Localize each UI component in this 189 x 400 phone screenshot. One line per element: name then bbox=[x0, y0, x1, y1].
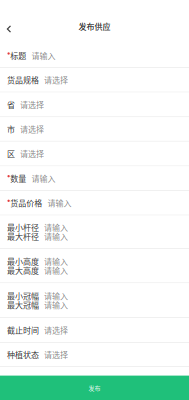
staticText: 请输入 bbox=[31, 50, 55, 61]
staticText: 请选择 bbox=[20, 99, 44, 110]
staticText: 最小冠幅 bbox=[7, 290, 39, 301]
staticText: 区 bbox=[7, 148, 15, 159]
staticText: 请输入 bbox=[47, 197, 71, 209]
button[interactable]: 种植状态 bbox=[0, 343, 189, 367]
button[interactable]: 区 bbox=[0, 142, 189, 166]
staticText: 货品规格 bbox=[7, 74, 39, 86]
staticText: 数量 bbox=[10, 172, 26, 184]
button[interactable]: 最小杆径 bbox=[0, 216, 189, 249]
staticText: 请选择 bbox=[44, 349, 68, 360]
staticText: 最大杆径 bbox=[7, 230, 39, 242]
staticText: 最大冠幅 bbox=[7, 299, 39, 310]
staticText: 截止时间 bbox=[7, 324, 39, 336]
button[interactable]: 货品规格 bbox=[0, 68, 189, 93]
button[interactable]: 最小高度 bbox=[0, 249, 189, 283]
staticText: 请选择 bbox=[44, 74, 68, 86]
staticText: 请输入 bbox=[44, 299, 68, 310]
staticText: 标题 bbox=[10, 50, 26, 61]
button[interactable]: 截止时间 bbox=[0, 318, 189, 343]
button[interactable]: 省 bbox=[0, 93, 189, 117]
staticText: 请输入 bbox=[31, 172, 55, 184]
staticText: 发布 bbox=[88, 383, 100, 392]
staticText: 请选择 bbox=[20, 148, 44, 159]
button[interactable]: 货品价格 bbox=[0, 191, 189, 216]
button[interactable]: 数量 bbox=[0, 166, 189, 191]
button[interactable]: 发布 bbox=[0, 376, 189, 400]
button[interactable]: Back bbox=[0, 0, 20, 44]
staticText: 省 bbox=[7, 99, 15, 110]
button[interactable]: 标题 bbox=[0, 44, 189, 68]
button[interactable]: 最小冠幅 bbox=[0, 283, 189, 318]
staticText: 请输入 bbox=[44, 290, 68, 301]
staticText: 市 bbox=[7, 123, 15, 135]
button[interactable]: 市 bbox=[0, 117, 189, 142]
staticText: 请选择 bbox=[44, 324, 68, 336]
staticText: 种植状态 bbox=[7, 349, 39, 360]
staticText: 最小杆径 bbox=[7, 221, 39, 233]
staticText: 最小高度 bbox=[7, 255, 39, 267]
staticText: 请输入 bbox=[44, 255, 68, 267]
staticText: 货品价格 bbox=[10, 197, 42, 209]
staticText: 发布供应 bbox=[78, 20, 110, 32]
staticText: 请输入 bbox=[44, 230, 68, 242]
staticText: 请输入 bbox=[44, 264, 68, 276]
staticText: 请输入 bbox=[44, 221, 68, 233]
staticText: 请选择 bbox=[20, 123, 44, 135]
staticText: 最大高度 bbox=[7, 264, 39, 276]
